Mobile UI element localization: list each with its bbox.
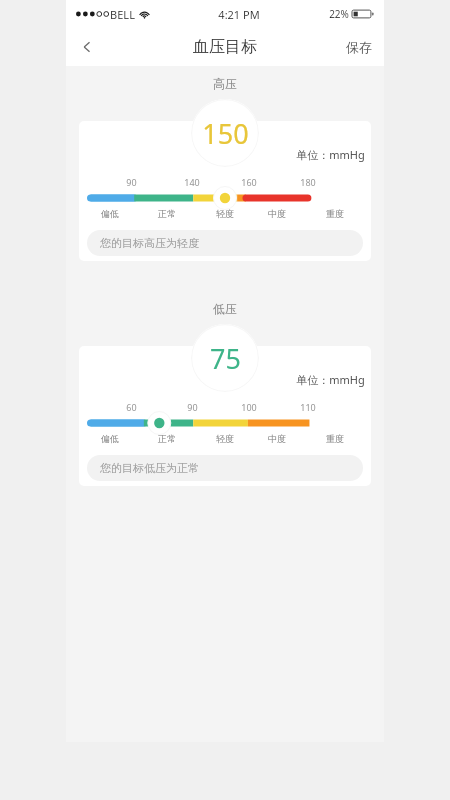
staticText: 正常 <box>158 433 176 444</box>
staticText: 90 <box>126 176 137 188</box>
staticText: 轻度 <box>216 433 234 444</box>
staticText: 75 <box>210 340 241 377</box>
staticText: 重度 <box>326 208 344 219</box>
staticText: 重度 <box>326 433 344 444</box>
staticText: 偏低 <box>101 208 119 219</box>
staticText: 低压 <box>213 301 237 316</box>
staticText: 100 <box>241 401 257 413</box>
staticText: 偏低 <box>101 433 119 444</box>
staticText: 180 <box>300 176 316 188</box>
button[interactable]: 您的目标低压为正常 <box>87 455 363 481</box>
staticText: 中度 <box>268 433 286 444</box>
staticText: 正常 <box>158 208 176 219</box>
staticText: 高压 <box>213 76 237 91</box>
staticText: 您的目标低压为正常 <box>100 461 199 475</box>
button[interactable]: 保存 <box>334 28 384 66</box>
staticText: 150 <box>202 115 249 152</box>
staticText: 您的目标高压为轻度 <box>100 236 199 250</box>
button[interactable]: Back <box>66 28 108 66</box>
button[interactable]: 您的目标高压为轻度 <box>87 230 363 256</box>
staticText: 160 <box>241 176 257 188</box>
button[interactable]: 75 <box>191 324 259 392</box>
button[interactable]: Pressure range slider <box>87 416 363 430</box>
staticText: 保存 <box>346 39 372 55</box>
staticText: 轻度 <box>216 208 234 219</box>
staticText: 血压目标 <box>193 37 257 57</box>
staticText: 中度 <box>268 208 286 219</box>
button[interactable]: 150 <box>191 99 259 167</box>
staticText: 140 <box>184 176 200 188</box>
staticText: 单位：mmHg <box>296 372 365 387</box>
staticText: 4:21 PM <box>218 7 260 22</box>
staticText: 110 <box>300 401 316 413</box>
staticText: 22% <box>329 7 349 21</box>
button[interactable]: Pressure range slider <box>87 191 363 205</box>
staticText: 单位：mmHg <box>296 147 365 162</box>
staticText: BELL <box>110 7 135 22</box>
staticText: 60 <box>126 401 137 413</box>
staticText: 90 <box>187 401 198 413</box>
